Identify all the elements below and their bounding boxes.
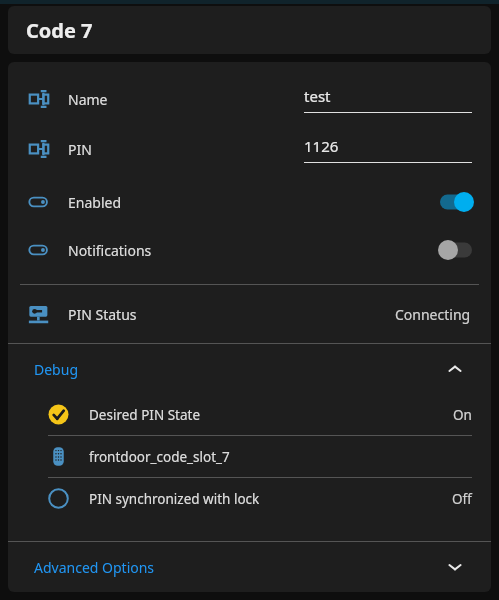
button[interactable]: Enabled	[8, 178, 491, 226]
staticText: Connecting	[395, 305, 471, 324]
button[interactable]: Desired PIN State	[8, 394, 491, 435]
other: Collapse Debug	[445, 359, 465, 379]
staticText: Name	[68, 90, 108, 109]
button[interactable]: Debug	[8, 344, 491, 394]
staticText: Code 7	[26, 17, 93, 44]
staticText: Debug	[34, 360, 78, 379]
staticText: frontdoor_code_slot_7	[89, 448, 230, 466]
button[interactable]: Name	[8, 74, 491, 124]
staticText: On	[453, 406, 472, 424]
staticText: Off	[452, 490, 472, 508]
button[interactable]: PIN Status	[8, 285, 491, 343]
other: Notifications	[432, 239, 472, 261]
other: Enabled	[432, 191, 472, 213]
staticText: test	[304, 86, 331, 106]
button[interactable]: PIN synchronized with lock	[8, 478, 491, 519]
staticText: Advanced Options	[34, 558, 155, 577]
other: Expand Advanced Options	[445, 557, 465, 577]
button[interactable]: PIN	[8, 124, 491, 174]
staticText: PIN	[68, 140, 92, 159]
staticText: Enabled	[68, 193, 122, 212]
staticText: Notifications	[68, 241, 152, 260]
staticText: PIN Status	[68, 305, 137, 324]
staticText: Desired PIN State	[89, 406, 201, 424]
staticText: PIN synchronized with lock	[89, 490, 260, 508]
button[interactable]: Notifications	[8, 226, 491, 274]
button[interactable]: Advanced Options	[8, 542, 491, 592]
button[interactable]: frontdoor_code_slot_7	[8, 436, 491, 477]
staticText: 1126	[304, 136, 339, 156]
